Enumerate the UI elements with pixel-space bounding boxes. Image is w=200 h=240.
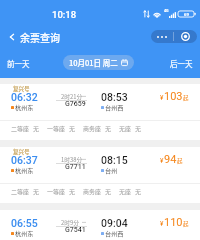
- button[interactable]: 复兴号: [0, 147, 200, 203]
- staticText: 08:15: [101, 154, 128, 166]
- staticText: 杭州东: [15, 229, 34, 238]
- button[interactable]: 前一天: [0, 52, 37, 75]
- staticText: 103: [164, 90, 183, 103]
- staticText: G7659: [65, 100, 86, 108]
- staticText: 商务座: [83, 187, 102, 196]
- staticText: 无: [105, 124, 112, 133]
- staticText: 无: [135, 187, 142, 196]
- staticText: 二等座: [11, 124, 30, 133]
- staticText: 94: [164, 153, 177, 166]
- button[interactable]: 后一天: [163, 52, 200, 75]
- staticText: 一等座: [47, 124, 66, 133]
- staticText: 复兴号: [13, 148, 30, 156]
- staticText: G7541: [65, 226, 86, 234]
- staticText: 无: [33, 124, 40, 133]
- staticText: 2时9分: [61, 218, 80, 226]
- staticText: 复兴号: [13, 85, 30, 93]
- button[interactable]: Back: [0, 28, 66, 46]
- staticText: 余票查询: [20, 30, 60, 44]
- staticText: 2时21分: [61, 92, 83, 100]
- staticText: 4G: [164, 9, 169, 13]
- staticText: 无: [33, 187, 40, 196]
- staticText: 一等座: [47, 187, 66, 196]
- staticText: ¥: [160, 157, 164, 165]
- staticText: 69: [184, 12, 189, 17]
- staticText: 杭州东: [15, 166, 34, 175]
- staticText: 无: [135, 124, 142, 133]
- staticText: ¥: [160, 220, 164, 228]
- staticText: 起: [183, 220, 189, 228]
- staticText: 台州西: [105, 103, 124, 112]
- staticText: 无: [105, 187, 112, 196]
- staticText: 二等座: [11, 187, 30, 196]
- staticText: 起: [183, 94, 189, 102]
- staticText: 06:55: [11, 217, 38, 229]
- staticText: 1时38分: [61, 155, 83, 163]
- button[interactable]: Close: [174, 30, 197, 43]
- staticText: 10月01日 周二: [69, 57, 118, 68]
- staticText: 无: [69, 124, 76, 133]
- staticText: G7711: [65, 163, 86, 171]
- button[interactable]: More options: [151, 30, 173, 43]
- staticText: 06:37: [11, 154, 38, 166]
- button[interactable]: 复兴号: [0, 84, 200, 140]
- staticText: 110: [164, 216, 183, 229]
- staticText: 08:53: [101, 91, 128, 103]
- staticText: 台州西: [105, 229, 124, 238]
- other: Back: [8, 33, 16, 41]
- staticText: 10:18: [52, 9, 77, 20]
- button[interactable]: 06:55: [0, 210, 200, 240]
- staticText: 商务座: [83, 124, 102, 133]
- staticText: 无: [69, 187, 76, 196]
- staticText: 起: [177, 157, 183, 165]
- staticText: ¥: [160, 94, 164, 102]
- staticText: 09:04: [101, 217, 128, 229]
- staticText: 06:32: [11, 91, 38, 103]
- staticText: 杭州东: [15, 103, 34, 112]
- staticText: 无座: [119, 187, 132, 196]
- staticText: 无座: [119, 124, 132, 133]
- button[interactable]: 10月01日 周二: [63, 55, 134, 70]
- staticText: 台州: [105, 166, 118, 175]
